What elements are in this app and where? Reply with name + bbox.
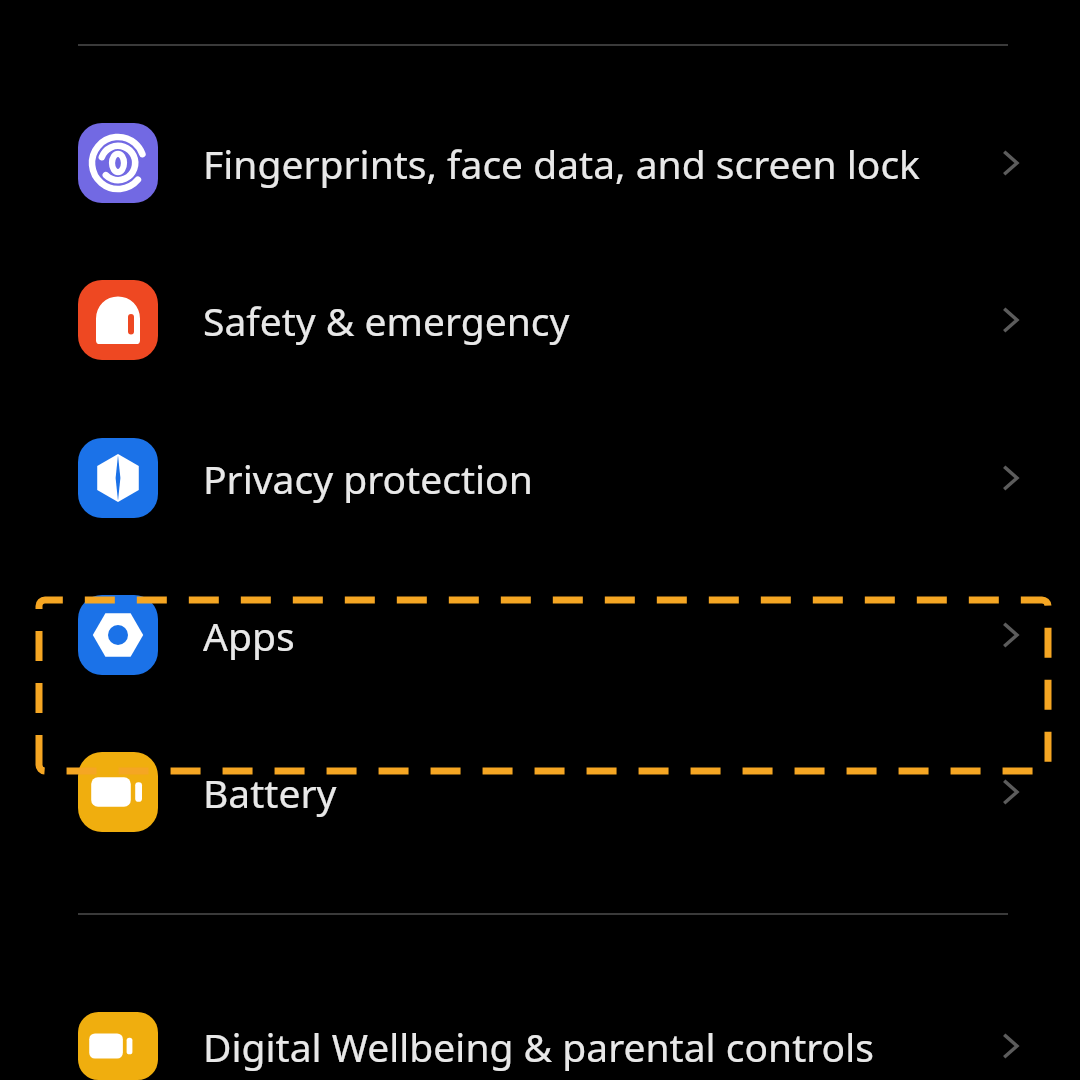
button[interactable]: Apps	[0, 595, 1080, 675]
staticText: Safety & emergency	[203, 294, 570, 347]
button[interactable]: Privacy protection	[0, 438, 1080, 518]
button[interactable]: Digital Wellbeing & parental controls	[0, 1012, 1080, 1080]
other: Open	[988, 1023, 1034, 1069]
staticText: Battery	[203, 766, 337, 819]
staticText: Privacy protection	[203, 452, 533, 505]
other: Open	[988, 297, 1034, 343]
button[interactable]: Fingerprints, face data, and screen lock	[0, 102, 1080, 224]
other: Open	[988, 140, 1034, 186]
other: Open	[988, 612, 1034, 658]
button[interactable]: Safety & emergency	[0, 280, 1080, 360]
other: Open	[988, 455, 1034, 501]
other: Open	[988, 769, 1034, 815]
staticText: Digital Wellbeing & parental controls	[203, 1020, 874, 1073]
staticText: Fingerprints, face data, and screen lock	[203, 137, 920, 190]
staticText: Apps	[203, 609, 295, 662]
button[interactable]: Battery	[0, 752, 1080, 832]
